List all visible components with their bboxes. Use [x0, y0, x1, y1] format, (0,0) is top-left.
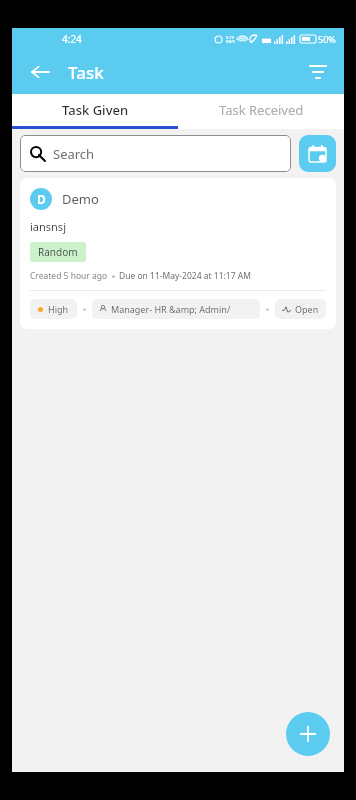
- staticText: Due on 11-May-2024 at 11:17 AM: [119, 270, 251, 282]
- button[interactable]: Open: [275, 299, 326, 319]
- button[interactable]: Task Given: [12, 94, 178, 126]
- button[interactable]: Add task: [286, 712, 330, 756]
- button[interactable]: Manager- HR &amp; Admin/Demo: [92, 299, 260, 319]
- staticText: Task Given: [62, 101, 129, 119]
- staticText: Demo: [62, 190, 99, 208]
- button[interactable]: Calendar: [299, 135, 336, 172]
- staticText: Task: [68, 61, 104, 84]
- button[interactable]: Back: [24, 56, 56, 88]
- button[interactable]: Filter: [302, 56, 334, 88]
- staticText: Random: [38, 245, 78, 259]
- staticText: Created 5 hour ago: [30, 270, 108, 282]
- staticText: D: [37, 191, 46, 207]
- staticText: Manager- HR &amp; Admin/Demo: [111, 303, 253, 315]
- staticText: Search: [53, 145, 95, 163]
- staticText: 4:24: [62, 32, 82, 46]
- staticText: 50%: [318, 33, 336, 45]
- staticText: Task Received: [219, 101, 304, 119]
- button[interactable]: Task Received: [178, 94, 344, 126]
- staticText: Open: [295, 303, 319, 315]
- staticText: iansnsj: [30, 219, 66, 234]
- button[interactable]: Search: [20, 135, 291, 172]
- button[interactable]: D: [20, 178, 336, 329]
- staticText: 0.79 KB/S: [226, 35, 235, 44]
- staticText: High: [48, 303, 69, 315]
- button[interactable]: High: [30, 299, 77, 319]
